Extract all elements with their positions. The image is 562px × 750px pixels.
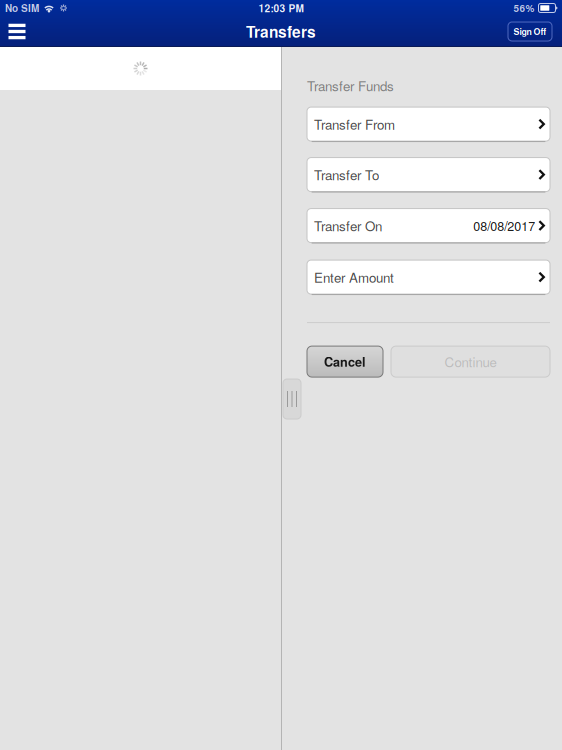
staticText: Transfers [246, 20, 316, 42]
staticText: Enter Amount [314, 267, 394, 287]
button[interactable]: Sign Off [508, 22, 552, 41]
staticText: Sign Off [513, 25, 546, 38]
button[interactable]: Continue [391, 346, 550, 377]
button[interactable]: Menu [0, 16, 34, 47]
button[interactable]: Transfer On [307, 209, 550, 243]
staticText: Cancel [324, 352, 366, 371]
staticText: Continue [444, 352, 496, 371]
button[interactable]: Enter Amount [307, 260, 550, 294]
staticText: No SIM [5, 1, 39, 15]
button[interactable]: Cancel [307, 346, 383, 377]
staticText: Transfer Funds [307, 76, 394, 95]
staticText: 08/08/2017 [473, 217, 535, 234]
button[interactable]: Transfer From [307, 107, 550, 141]
button[interactable]: Transfer To [307, 158, 550, 192]
staticText: 12:03 PM [258, 1, 303, 15]
staticText: Transfer On [314, 216, 382, 235]
staticText: Transfer To [314, 165, 379, 184]
staticText: Transfer From [314, 114, 395, 134]
staticText: 56% [513, 1, 534, 15]
